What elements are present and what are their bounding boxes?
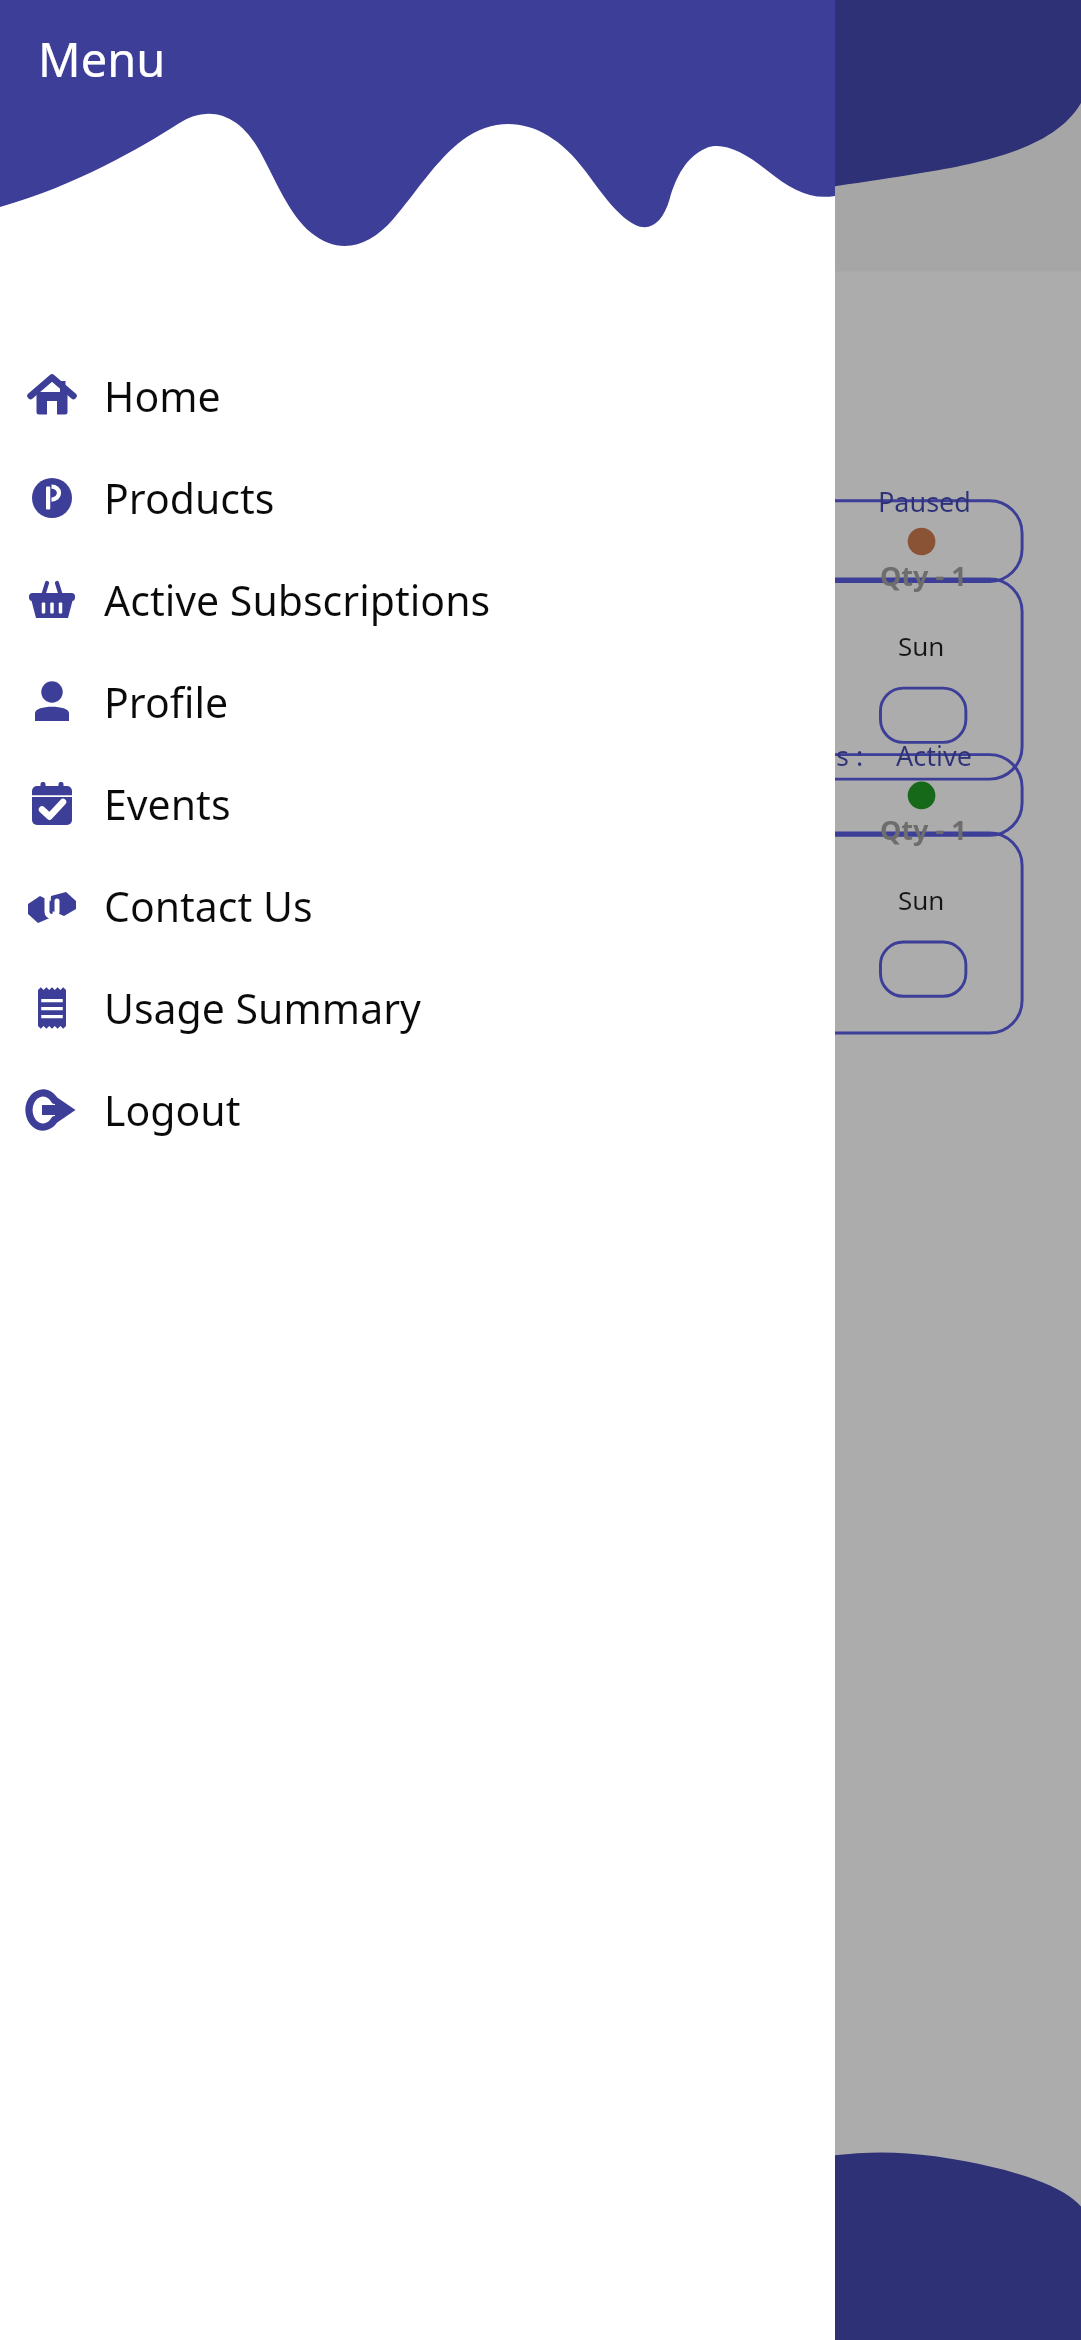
other: Usage Summary bbox=[27, 983, 77, 1033]
button[interactable]: Home bbox=[0, 345, 835, 447]
staticText: Logout bbox=[104, 1082, 241, 1138]
other: Products bbox=[27, 473, 77, 523]
button[interactable]: Usage Summary bbox=[0, 957, 835, 1059]
staticText: Products bbox=[104, 470, 275, 526]
staticText: Menu bbox=[38, 27, 166, 91]
other: Logout bbox=[27, 1085, 77, 1135]
staticText: Paused bbox=[878, 483, 971, 520]
button[interactable]: Products bbox=[0, 447, 835, 549]
staticText: Active bbox=[896, 737, 972, 774]
staticText: Qty - 1 bbox=[880, 557, 967, 594]
staticText: Active Subscriptions bbox=[104, 572, 491, 628]
staticText: Sun bbox=[898, 628, 945, 663]
button[interactable]: Contact Us bbox=[0, 855, 835, 957]
staticText: Contact Us bbox=[104, 878, 313, 934]
staticText: Sun bbox=[898, 882, 945, 917]
button[interactable]: Logout bbox=[0, 1059, 835, 1161]
other: Profile bbox=[27, 677, 77, 727]
other: Active Subscriptions bbox=[27, 575, 77, 625]
other: Contact Us bbox=[27, 881, 77, 931]
staticText: Events bbox=[104, 776, 231, 832]
staticText: Profile bbox=[104, 674, 229, 730]
other: Events bbox=[27, 779, 77, 829]
staticText: Home bbox=[104, 368, 221, 424]
button[interactable]: Events bbox=[0, 753, 835, 855]
staticText: s : bbox=[836, 737, 864, 774]
button[interactable]: Active Subscriptions bbox=[0, 549, 835, 651]
other: Home bbox=[27, 371, 77, 421]
button[interactable]: Profile bbox=[0, 651, 835, 753]
staticText: Qty - 1 bbox=[880, 811, 967, 848]
staticText: Usage Summary bbox=[104, 980, 421, 1036]
